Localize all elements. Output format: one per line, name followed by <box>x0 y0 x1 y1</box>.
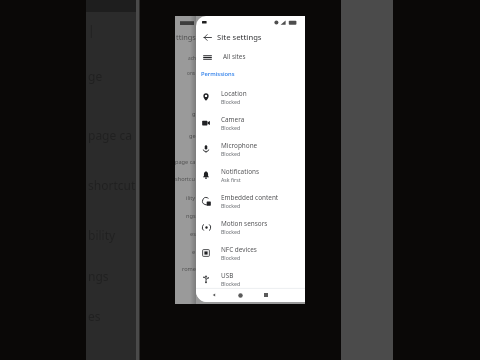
staticText: Embedded content <box>221 193 279 202</box>
staticText: Blocked <box>221 150 241 157</box>
staticText: All sites <box>223 52 246 61</box>
staticText: ge <box>88 68 103 84</box>
staticText: shortcut <box>175 175 196 183</box>
staticText: USB <box>221 271 234 280</box>
staticText: ach <box>188 55 196 62</box>
staticText: ngs <box>186 212 196 220</box>
staticText: Blocked <box>221 98 241 105</box>
staticText: Camera <box>221 115 245 124</box>
staticText: Motion sensors <box>221 219 268 228</box>
button[interactable]: Microphone <box>196 136 305 162</box>
staticText: Blocked <box>221 228 241 235</box>
staticText: NFC devices <box>221 245 257 254</box>
button[interactable]: Recent apps <box>261 290 271 300</box>
staticText: e <box>192 248 196 256</box>
button[interactable]: USB <box>196 266 305 292</box>
button[interactable]: All sites <box>196 47 305 66</box>
button[interactable]: Back <box>209 290 219 300</box>
button[interactable]: Motion sensors <box>196 214 305 240</box>
button[interactable]: Notifications <box>196 162 305 188</box>
staticText: Location <box>221 89 247 98</box>
staticText: shortcut <box>88 177 136 193</box>
staticText: ge <box>189 132 196 140</box>
staticText: Blocked <box>221 280 241 287</box>
staticText: ngs <box>88 268 109 284</box>
staticText: Microphone <box>221 141 258 150</box>
button[interactable]: Home <box>235 290 245 300</box>
button[interactable]: Back <box>201 31 213 43</box>
staticText: page ca <box>175 158 196 166</box>
staticText: es <box>190 230 196 238</box>
staticText: rome <box>182 265 196 273</box>
staticText: Blocked <box>221 254 241 261</box>
staticText: ttings <box>176 32 196 42</box>
staticText: Site settings <box>217 32 262 42</box>
staticText: Permissions <box>201 70 235 78</box>
staticText: ility <box>186 194 196 202</box>
staticText: Ask first <box>221 176 241 183</box>
button[interactable]: Embedded content <box>196 188 305 214</box>
staticText: ons <box>187 70 196 77</box>
staticText: Blocked <box>221 202 241 209</box>
staticText: Notifications <box>221 167 260 176</box>
button[interactable]: NFC devices <box>196 240 305 266</box>
button[interactable]: Camera <box>196 110 305 136</box>
button[interactable]: Location <box>196 84 305 110</box>
staticText: page ca <box>88 127 132 143</box>
staticText: g <box>192 110 196 118</box>
staticText: bility <box>88 227 116 243</box>
staticText: Blocked <box>221 124 241 131</box>
staticText: es <box>88 308 101 324</box>
